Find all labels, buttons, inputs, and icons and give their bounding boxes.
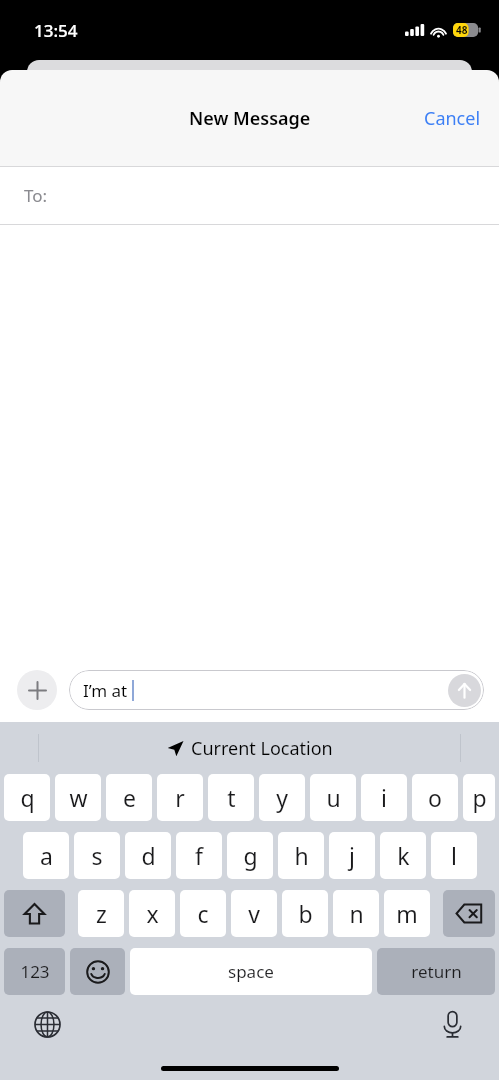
staticText: z [96,898,107,929]
staticText: r [175,782,185,813]
button[interactable]: a [23,832,69,879]
staticText: w [69,782,88,813]
button[interactable]: c [180,890,226,937]
staticText: e [123,782,136,813]
button[interactable]: q [4,774,50,821]
button[interactable]: f [176,832,222,879]
staticText: c [197,898,209,929]
staticText: k [397,840,410,871]
staticText: Cancel [424,106,481,131]
button[interactable]: t [208,774,254,821]
staticText: l [451,840,457,871]
button[interactable]: o [412,774,458,821]
staticText: t [227,782,236,813]
button[interactable]: w [55,774,101,821]
button[interactable]: I’m at [69,670,484,710]
button[interactable]: i [361,774,407,821]
staticText: p [472,782,487,813]
button[interactable]: Emoji [70,948,125,995]
button[interactable]: Send [448,674,481,707]
staticText: space [228,960,274,983]
button[interactable]: l [431,832,477,879]
button[interactable]: r [157,774,203,821]
staticText: x [146,898,159,929]
staticText: d [141,840,156,871]
staticText: v [248,898,260,929]
button[interactable]: d [125,832,171,879]
button[interactable]: 123 [4,948,65,995]
button[interactable]: Shift [4,890,65,937]
button[interactable]: b [282,890,328,937]
button[interactable]: j [329,832,375,879]
staticText: m [396,898,418,929]
staticText: i [381,782,387,813]
button[interactable]: z [78,890,124,937]
staticText: a [40,840,53,871]
button[interactable]: Backspace [443,890,495,937]
button[interactable]: space [130,948,372,995]
button[interactable]: To: [0,167,499,224]
button[interactable]: x [129,890,175,937]
staticText: 48 [456,23,468,37]
staticText: h [294,840,309,871]
button[interactable]: Current Location [167,736,333,761]
staticText: o [428,782,442,813]
staticText: u [326,782,341,813]
button[interactable]: n [333,890,379,937]
staticText: b [298,898,313,929]
button[interactable]: return [377,948,495,995]
button[interactable]: Cancel [406,96,499,141]
staticText: return [411,960,462,983]
staticText: I’m at [83,679,132,702]
staticText: s [91,840,103,871]
staticText: New Message [189,106,311,131]
staticText: Current Location [191,736,333,761]
button[interactable]: s [74,832,120,879]
staticText: 13:54 [34,19,78,42]
button[interactable]: y [259,774,305,821]
button[interactable]: e [106,774,152,821]
button[interactable]: Dictation [435,1007,469,1041]
button[interactable]: u [310,774,356,821]
staticText: g [243,840,258,871]
staticText: To: [24,184,48,207]
staticText: y [276,782,288,813]
staticText: f [195,840,203,871]
button[interactable]: m [384,890,430,937]
button[interactable]: Add attachment [17,670,57,710]
button[interactable]: Change keyboard [30,1007,64,1041]
button[interactable]: h [278,832,324,879]
button[interactable]: v [231,890,277,937]
staticText: q [20,782,35,813]
button[interactable]: g [227,832,273,879]
staticText: j [349,840,355,871]
staticText: n [349,898,364,929]
button[interactable]: p [463,774,495,821]
staticText: 123 [20,960,50,983]
button[interactable]: k [380,832,426,879]
